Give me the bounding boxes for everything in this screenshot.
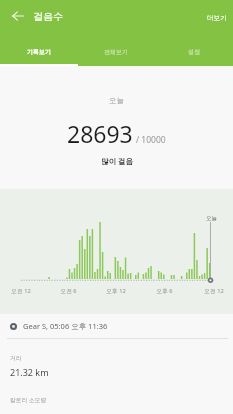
- staticText: 오전 12: [11, 287, 31, 295]
- button[interactable]: 칼로리 소모량: [0, 381, 233, 414]
- staticText: 더보기: [207, 14, 227, 22]
- button[interactable]: Back: [7, 5, 29, 27]
- button[interactable]: 더보기: [200, 6, 233, 27]
- button[interactable]: Gear S, 05:06 오후 11:36: [0, 314, 233, 338]
- staticText: 오후 6: [156, 287, 173, 295]
- staticText: 기록보기: [27, 48, 51, 56]
- staticText: 칼로리 소모량: [10, 396, 47, 404]
- staticText: 21.32 km: [10, 366, 49, 378]
- button[interactable]: 전체보기: [77, 32, 155, 66]
- staticText: 오전 12: [204, 287, 224, 295]
- staticText: 많이 걸음: [101, 156, 133, 166]
- button[interactable]: 기록보기: [0, 32, 77, 66]
- button[interactable]: 거리: [0, 339, 233, 381]
- staticText: / 10000: [136, 134, 166, 146]
- button[interactable]: 설정: [155, 32, 233, 66]
- staticText: 오늘: [206, 215, 217, 222]
- staticText: 오늘: [109, 96, 124, 105]
- staticText: 오후 12: [106, 287, 126, 295]
- staticText: 걸음수: [33, 10, 63, 23]
- staticText: 28693: [67, 118, 133, 149]
- staticText: 설정: [188, 48, 200, 56]
- staticText: Gear S, 05:06 오후 11:36: [23, 321, 108, 331]
- staticText: 오전 6: [60, 287, 77, 295]
- staticText: 전체보기: [104, 48, 128, 56]
- staticText: 거리: [10, 354, 22, 361]
